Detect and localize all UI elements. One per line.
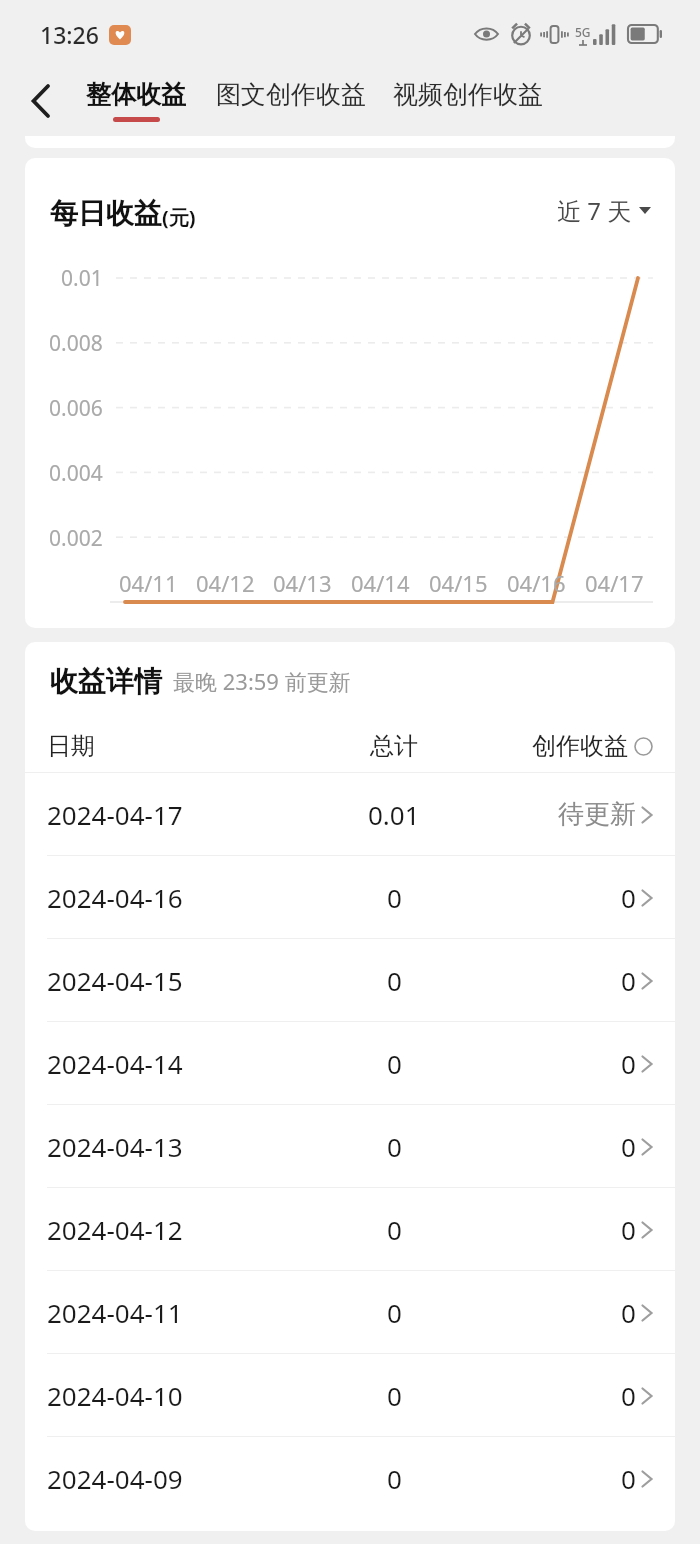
staticText: 04/17	[585, 568, 644, 598]
staticText: 04/16	[507, 568, 566, 598]
staticText: 0	[387, 1046, 402, 1081]
staticText: (元)	[162, 204, 196, 231]
staticText: 0	[621, 1129, 636, 1164]
staticText: 0	[387, 963, 402, 998]
button[interactable]: 2024-04-13	[25, 1105, 675, 1187]
staticText: 0	[621, 1295, 636, 1330]
button[interactable]: 2024-04-14	[25, 1022, 675, 1104]
button[interactable]: 2024-04-09	[25, 1437, 675, 1519]
staticText: 视频创作收益	[393, 79, 543, 110]
staticText: 13:26	[40, 19, 99, 50]
staticText: 2024-04-16	[47, 880, 183, 915]
staticText: 0	[387, 1129, 402, 1164]
staticText: 0.008	[49, 329, 103, 358]
staticText: 2024-04-13	[47, 1129, 183, 1164]
staticText: 0.004	[49, 459, 103, 488]
staticText: 0	[621, 1378, 636, 1413]
staticText: 0.01	[368, 797, 420, 832]
staticText: 图文创作收益	[216, 79, 366, 110]
staticText: 待更新	[558, 798, 636, 831]
staticText: 0	[387, 1295, 402, 1330]
staticText: 0	[387, 1461, 402, 1496]
staticText: 04/13	[273, 568, 332, 598]
staticText: 0	[387, 1212, 402, 1247]
staticText: 2024-04-17	[47, 797, 183, 832]
staticText: 2024-04-15	[47, 963, 183, 998]
staticText: 收益详情	[50, 664, 162, 699]
staticText: 整体收益	[86, 79, 186, 110]
button[interactable]: 2024-04-16	[25, 856, 675, 938]
staticText: 近 7 天	[557, 194, 632, 227]
button[interactable]: 近 7 天	[553, 190, 655, 231]
button[interactable]: 2024-04-12	[25, 1188, 675, 1270]
button[interactable]: 2024-04-10	[25, 1354, 675, 1436]
button[interactable]: 2024-04-17	[25, 773, 675, 855]
button[interactable]: 整体收益	[86, 76, 186, 125]
staticText: 04/14	[351, 568, 410, 598]
staticText: 2024-04-12	[47, 1212, 183, 1247]
staticText: 0.006	[49, 394, 103, 423]
staticText: 2024-04-10	[47, 1378, 183, 1413]
staticText: 2024-04-11	[47, 1295, 183, 1330]
staticText: 0.01	[61, 264, 103, 293]
staticText: 日期	[47, 731, 95, 761]
staticText: 0	[387, 880, 402, 915]
staticText: 04/12	[196, 568, 255, 598]
staticText: 5G	[575, 24, 591, 40]
button[interactable]: Back	[14, 74, 68, 128]
button[interactable]: 视频创作收益	[393, 76, 543, 125]
button[interactable]: 2024-04-15	[25, 939, 675, 1021]
staticText: 0	[621, 1046, 636, 1081]
staticText: 04/11	[119, 568, 178, 598]
staticText: 0	[621, 1212, 636, 1247]
staticText: 0	[621, 963, 636, 998]
staticText: 每日收益	[50, 196, 162, 231]
button[interactable]: 图文创作收益	[216, 76, 366, 125]
staticText: 2024-04-14	[47, 1046, 183, 1081]
staticText: 创作收益	[532, 731, 628, 761]
button[interactable]: 2024-04-11	[25, 1271, 675, 1353]
staticText: 0.002	[49, 524, 103, 553]
staticText: 最晚 23:59 前更新	[173, 666, 351, 696]
staticText: 0	[621, 880, 636, 915]
staticText: 0	[387, 1378, 402, 1413]
staticText: 04/15	[429, 568, 488, 598]
staticText: 0	[621, 1461, 636, 1496]
staticText: 总计	[370, 731, 418, 761]
staticText: 2024-04-09	[47, 1461, 183, 1496]
